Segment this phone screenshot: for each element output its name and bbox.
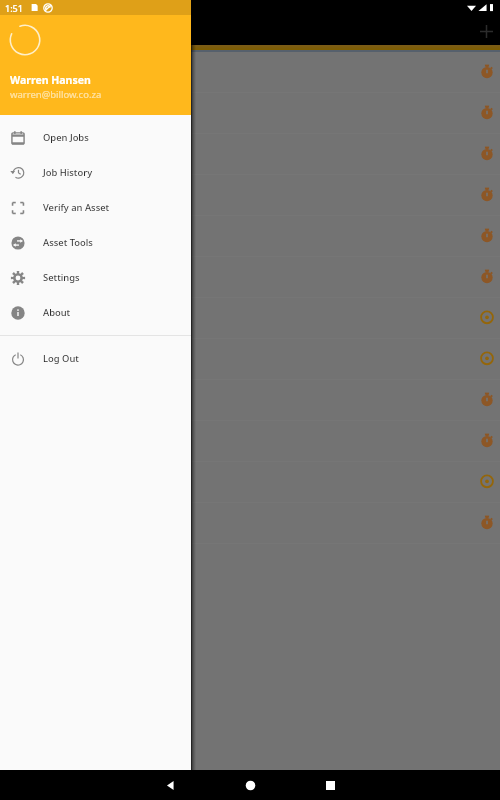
staticText: Settings xyxy=(43,271,80,284)
button[interactable] xyxy=(479,514,495,530)
staticText: 1:51 xyxy=(5,2,23,14)
button[interactable] xyxy=(479,473,495,489)
button[interactable] xyxy=(479,432,495,448)
button[interactable]: About xyxy=(0,295,191,330)
staticText: Log Out xyxy=(43,352,79,365)
button[interactable]: Job History xyxy=(0,155,191,190)
button[interactable]: Log Out xyxy=(0,341,191,376)
button[interactable] xyxy=(479,227,495,243)
button[interactable] xyxy=(479,145,495,161)
button[interactable]: Home xyxy=(210,770,290,800)
staticText: Warren Hansen xyxy=(10,73,91,87)
button[interactable] xyxy=(479,186,495,202)
button[interactable] xyxy=(479,350,495,366)
staticText: warren@billow.co.za xyxy=(10,88,102,101)
staticText: Open Jobs xyxy=(43,131,89,144)
staticText: Job History xyxy=(43,166,93,179)
button[interactable]: Open Jobs xyxy=(0,120,191,155)
button[interactable] xyxy=(479,268,495,284)
button[interactable] xyxy=(479,104,495,120)
button[interactable]: Add xyxy=(480,25,493,38)
button[interactable] xyxy=(479,63,495,79)
button[interactable]: Verify an Asset xyxy=(0,190,191,225)
button[interactable]: Asset Tools xyxy=(0,225,191,260)
button[interactable]: Settings xyxy=(0,260,191,295)
staticText: Asset Tools xyxy=(43,236,93,249)
staticText: Verify an Asset xyxy=(43,201,110,214)
button[interactable]: Back xyxy=(130,770,210,800)
button[interactable]: Recents xyxy=(290,770,370,800)
button[interactable] xyxy=(479,391,495,407)
button[interactable] xyxy=(479,309,495,325)
staticText: About xyxy=(43,306,71,319)
